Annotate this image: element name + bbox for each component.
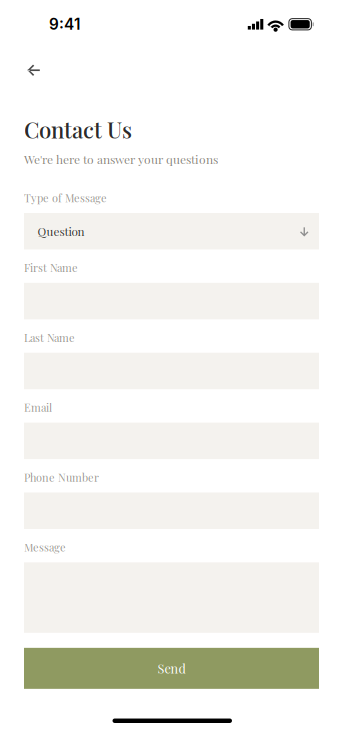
staticText: Type of Message (24, 190, 107, 205)
button[interactable]: Back (21, 54, 46, 84)
staticText: Phone Number (24, 470, 99, 484)
button[interactable]: Type of Message: Question (24, 213, 319, 249)
staticText: Question (37, 223, 84, 239)
staticText: Last Name (24, 330, 75, 345)
staticText: Email (24, 400, 52, 415)
staticText: Contact Us (24, 114, 132, 144)
staticText: We're here to answer your questions (24, 151, 218, 167)
staticText: First Name (24, 260, 78, 275)
staticText: Send (157, 660, 185, 677)
staticText: Message (24, 540, 66, 554)
staticText: 9:41 (49, 15, 80, 34)
button[interactable]: Send (24, 648, 319, 689)
